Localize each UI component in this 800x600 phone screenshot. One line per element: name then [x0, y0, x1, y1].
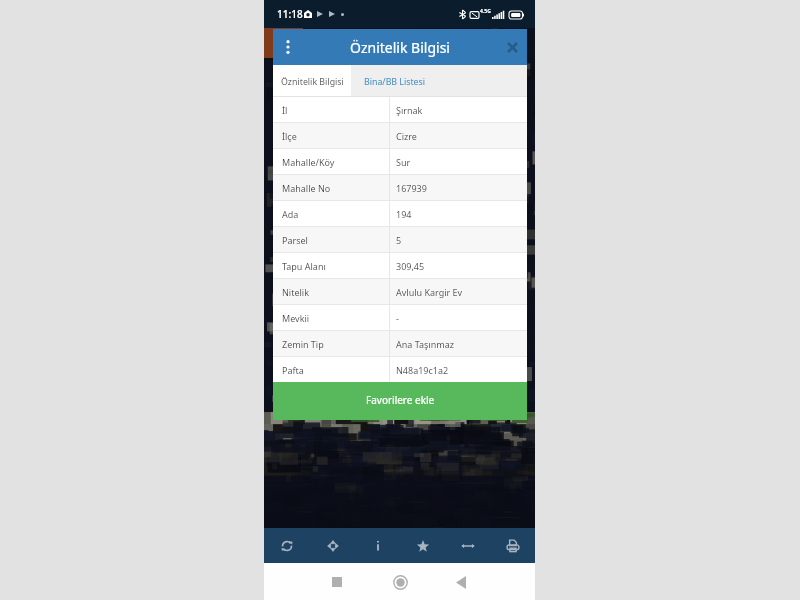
button[interactable]: Mevkii	[273, 305, 527, 330]
staticText: Pafta	[282, 364, 304, 376]
button[interactable]: Info	[355, 528, 400, 563]
staticText: N48a19c1a2	[396, 364, 449, 376]
button[interactable]: Bina/BB Listesi	[351, 65, 439, 96]
staticText: Favorilere ekle	[366, 393, 435, 407]
button[interactable]: Favorilere ekle	[273, 382, 527, 420]
staticText: Şırnak	[396, 104, 423, 116]
staticText: Cizre	[396, 130, 417, 142]
staticText: Tapu Alanı	[282, 260, 326, 272]
staticText: Parsel	[282, 234, 308, 246]
staticText: 5	[396, 234, 402, 246]
button[interactable]: Mahalle No	[273, 175, 527, 200]
button[interactable]: Parsel	[273, 227, 527, 252]
button[interactable]: Öznitelik Bilgisi	[273, 65, 351, 96]
staticText: Zemin Tip	[282, 338, 324, 350]
button[interactable]: Locate	[310, 528, 355, 563]
staticText: İlçe	[282, 130, 297, 142]
staticText: Ana Taşınmaz	[396, 338, 454, 350]
button[interactable]: İl	[273, 97, 527, 122]
button[interactable]: Print	[490, 528, 535, 563]
staticText: Bina/BB Listesi	[364, 76, 426, 88]
button[interactable]: Refresh	[264, 528, 310, 563]
staticText: -	[396, 312, 399, 324]
button[interactable]: Close	[497, 29, 527, 65]
button[interactable]: Mahalle/Köy	[273, 149, 527, 174]
staticText: Ada	[282, 208, 299, 220]
button[interactable]: Tapu Alanı	[273, 253, 527, 278]
staticText: Öznitelik Bilgisi	[281, 76, 344, 88]
button[interactable]: Pafta	[273, 357, 527, 382]
button[interactable]: Ada	[273, 201, 527, 226]
button[interactable]: Measure	[445, 528, 490, 563]
button[interactable]: İlçe	[273, 123, 527, 148]
staticText: Mahalle/Köy	[282, 156, 335, 168]
staticText: Mevkii	[282, 312, 310, 324]
button[interactable]: Favorite	[400, 528, 445, 563]
staticText: Nitelik	[282, 286, 309, 298]
staticText: İl	[282, 104, 288, 116]
button[interactable]: Zemin Tip	[273, 331, 527, 356]
staticText: Sur	[396, 156, 411, 168]
button[interactable]: More options	[273, 29, 303, 65]
button[interactable]: Back	[445, 566, 477, 598]
button[interactable]: Nitelik	[273, 279, 527, 304]
button[interactable]: Recents	[321, 566, 353, 598]
button[interactable]: Home	[384, 566, 416, 598]
staticText: Mahalle No	[282, 182, 331, 194]
staticText: 167939	[396, 182, 427, 194]
staticText: 11:18	[277, 7, 303, 21]
staticText: Öznitelik Bilgisi	[303, 38, 497, 57]
staticText: Avlulu Kargir Ev	[396, 286, 463, 298]
staticText: 194	[396, 208, 412, 220]
staticText: 4.5G	[480, 8, 491, 15]
staticText: 309,45	[396, 260, 425, 272]
